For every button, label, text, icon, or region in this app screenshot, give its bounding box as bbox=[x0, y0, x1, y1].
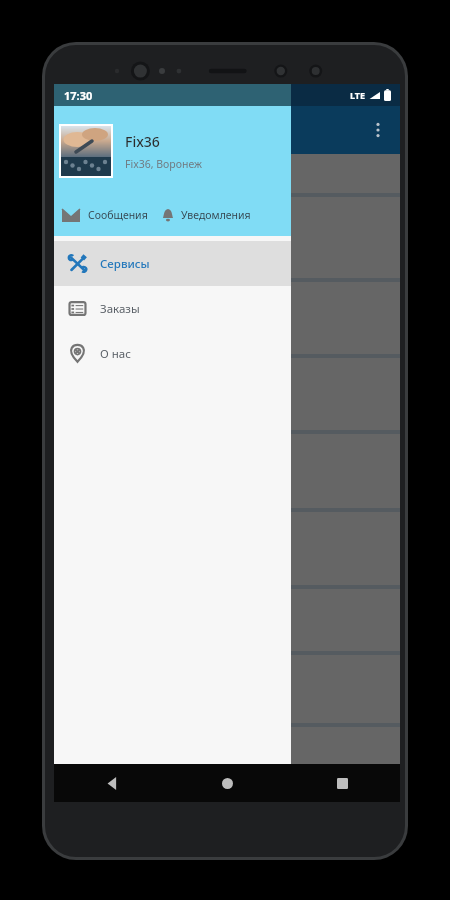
staticText: Fix36, Воронеж bbox=[125, 157, 202, 171]
button[interactable]: Back bbox=[54, 764, 170, 802]
button[interactable]: Заказы bbox=[54, 286, 291, 331]
button[interactable]: О нас bbox=[54, 331, 291, 376]
button[interactable]: Home bbox=[170, 764, 285, 802]
button[interactable] bbox=[54, 282, 400, 358]
staticText: 17:30 bbox=[64, 88, 93, 103]
staticText: Сервисы bbox=[100, 256, 150, 272]
staticText: Заказы bbox=[100, 301, 140, 317]
staticText: Сообщения bbox=[88, 208, 148, 222]
button[interactable]: More options bbox=[356, 108, 400, 152]
staticText: Уведомления bbox=[181, 208, 251, 222]
button[interactable] bbox=[54, 197, 400, 282]
staticText: ТЕ bbox=[60, 167, 75, 185]
button[interactable] bbox=[54, 655, 400, 727]
button[interactable] bbox=[54, 434, 400, 512]
button[interactable] bbox=[54, 589, 400, 655]
button[interactable]: Сообщения bbox=[62, 208, 148, 222]
button[interactable]: Сервисы bbox=[54, 241, 291, 286]
staticText: Fix36 bbox=[125, 132, 160, 151]
button[interactable] bbox=[54, 358, 400, 434]
button[interactable] bbox=[61, 126, 111, 176]
button[interactable]: Уведомления bbox=[162, 208, 251, 222]
button[interactable]: Recent apps bbox=[285, 764, 400, 802]
staticText: LTE bbox=[350, 89, 366, 101]
button[interactable] bbox=[54, 512, 400, 589]
staticText: О нас bbox=[100, 346, 131, 362]
button[interactable]: ТЕ bbox=[54, 154, 400, 197]
